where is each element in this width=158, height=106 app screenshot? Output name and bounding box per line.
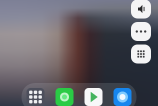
button[interactable]: Video effects bbox=[131, 44, 151, 63]
button[interactable]: More options bbox=[131, 22, 151, 41]
button[interactable]: Speaker bbox=[131, 0, 151, 18]
button[interactable]: Play bbox=[84, 88, 102, 106]
button[interactable]: Phone bbox=[55, 88, 73, 106]
button[interactable]: App Library bbox=[26, 88, 44, 106]
button[interactable]: Safari bbox=[113, 88, 131, 106]
